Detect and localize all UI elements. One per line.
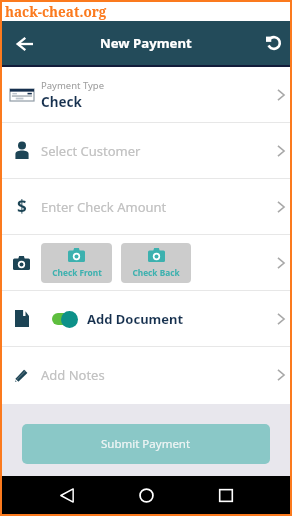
button[interactable]: Add Document	[2, 291, 290, 346]
button[interactable]: Add Notes	[2, 347, 290, 402]
staticText: Check	[41, 93, 82, 111]
staticText: Add Document	[87, 310, 184, 328]
staticText: Select Customer	[41, 142, 141, 160]
button[interactable]: Select Customer	[2, 123, 290, 178]
button[interactable]: Reset	[259, 28, 289, 58]
staticText: Check Front	[52, 267, 102, 278]
staticText: Check Back	[132, 267, 180, 278]
button[interactable]: Home	[129, 478, 163, 512]
staticText: Submit Payment	[101, 436, 191, 452]
button[interactable]: Check Front	[2, 235, 290, 290]
staticText: Enter Check Amount	[41, 198, 167, 216]
button[interactable]: Submit Payment	[22, 424, 270, 464]
staticText: New Payment	[100, 34, 192, 52]
button[interactable]: Back	[9, 28, 40, 59]
button[interactable]: Check Front	[41, 243, 112, 283]
button[interactable]: Recent apps	[209, 478, 243, 512]
staticText: $	[17, 195, 27, 218]
button[interactable]: Back	[50, 478, 84, 512]
staticText: Add Notes	[41, 366, 105, 384]
staticText: Payment Type	[41, 79, 105, 92]
button[interactable]: Check Back	[121, 243, 191, 283]
staticText: hack-cheat.org	[5, 3, 107, 21]
button[interactable]: Payment Type	[2, 67, 290, 122]
button[interactable]: $	[2, 179, 290, 234]
